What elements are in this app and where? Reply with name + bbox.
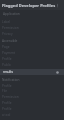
button[interactable]: Application [3,11,64,17]
button[interactable]: Accessible [2,38,64,44]
staticText: File [2,89,8,93]
staticText: Permission [2,95,19,99]
staticText: Profile [2,84,12,88]
staticText: Label [2,20,11,24]
staticText: Payment [2,51,16,55]
staticText: Flagged Developer Profiles [2,3,56,8]
staticText: Profile [2,57,12,61]
staticText: Profile [2,107,12,111]
button[interactable]: results [3,69,64,75]
staticText: Privacy [2,32,13,36]
button[interactable]: Permission [2,25,64,31]
button[interactable]: Notification [2,77,64,83]
button[interactable]: Payment [2,50,64,56]
staticText: Accessible [2,39,18,43]
staticText: Page [2,45,10,49]
staticText: Permission [2,26,19,30]
staticText: Profile [2,101,12,105]
button[interactable]: More options [54,2,61,9]
button[interactable]: Permission [2,94,64,100]
staticText: Notification [2,78,20,82]
staticText: Public [2,63,12,67]
staticText: Application [3,12,20,16]
button[interactable] [0,69,64,75]
staticText: results [3,70,14,74]
staticText: a tool [2,113,11,117]
